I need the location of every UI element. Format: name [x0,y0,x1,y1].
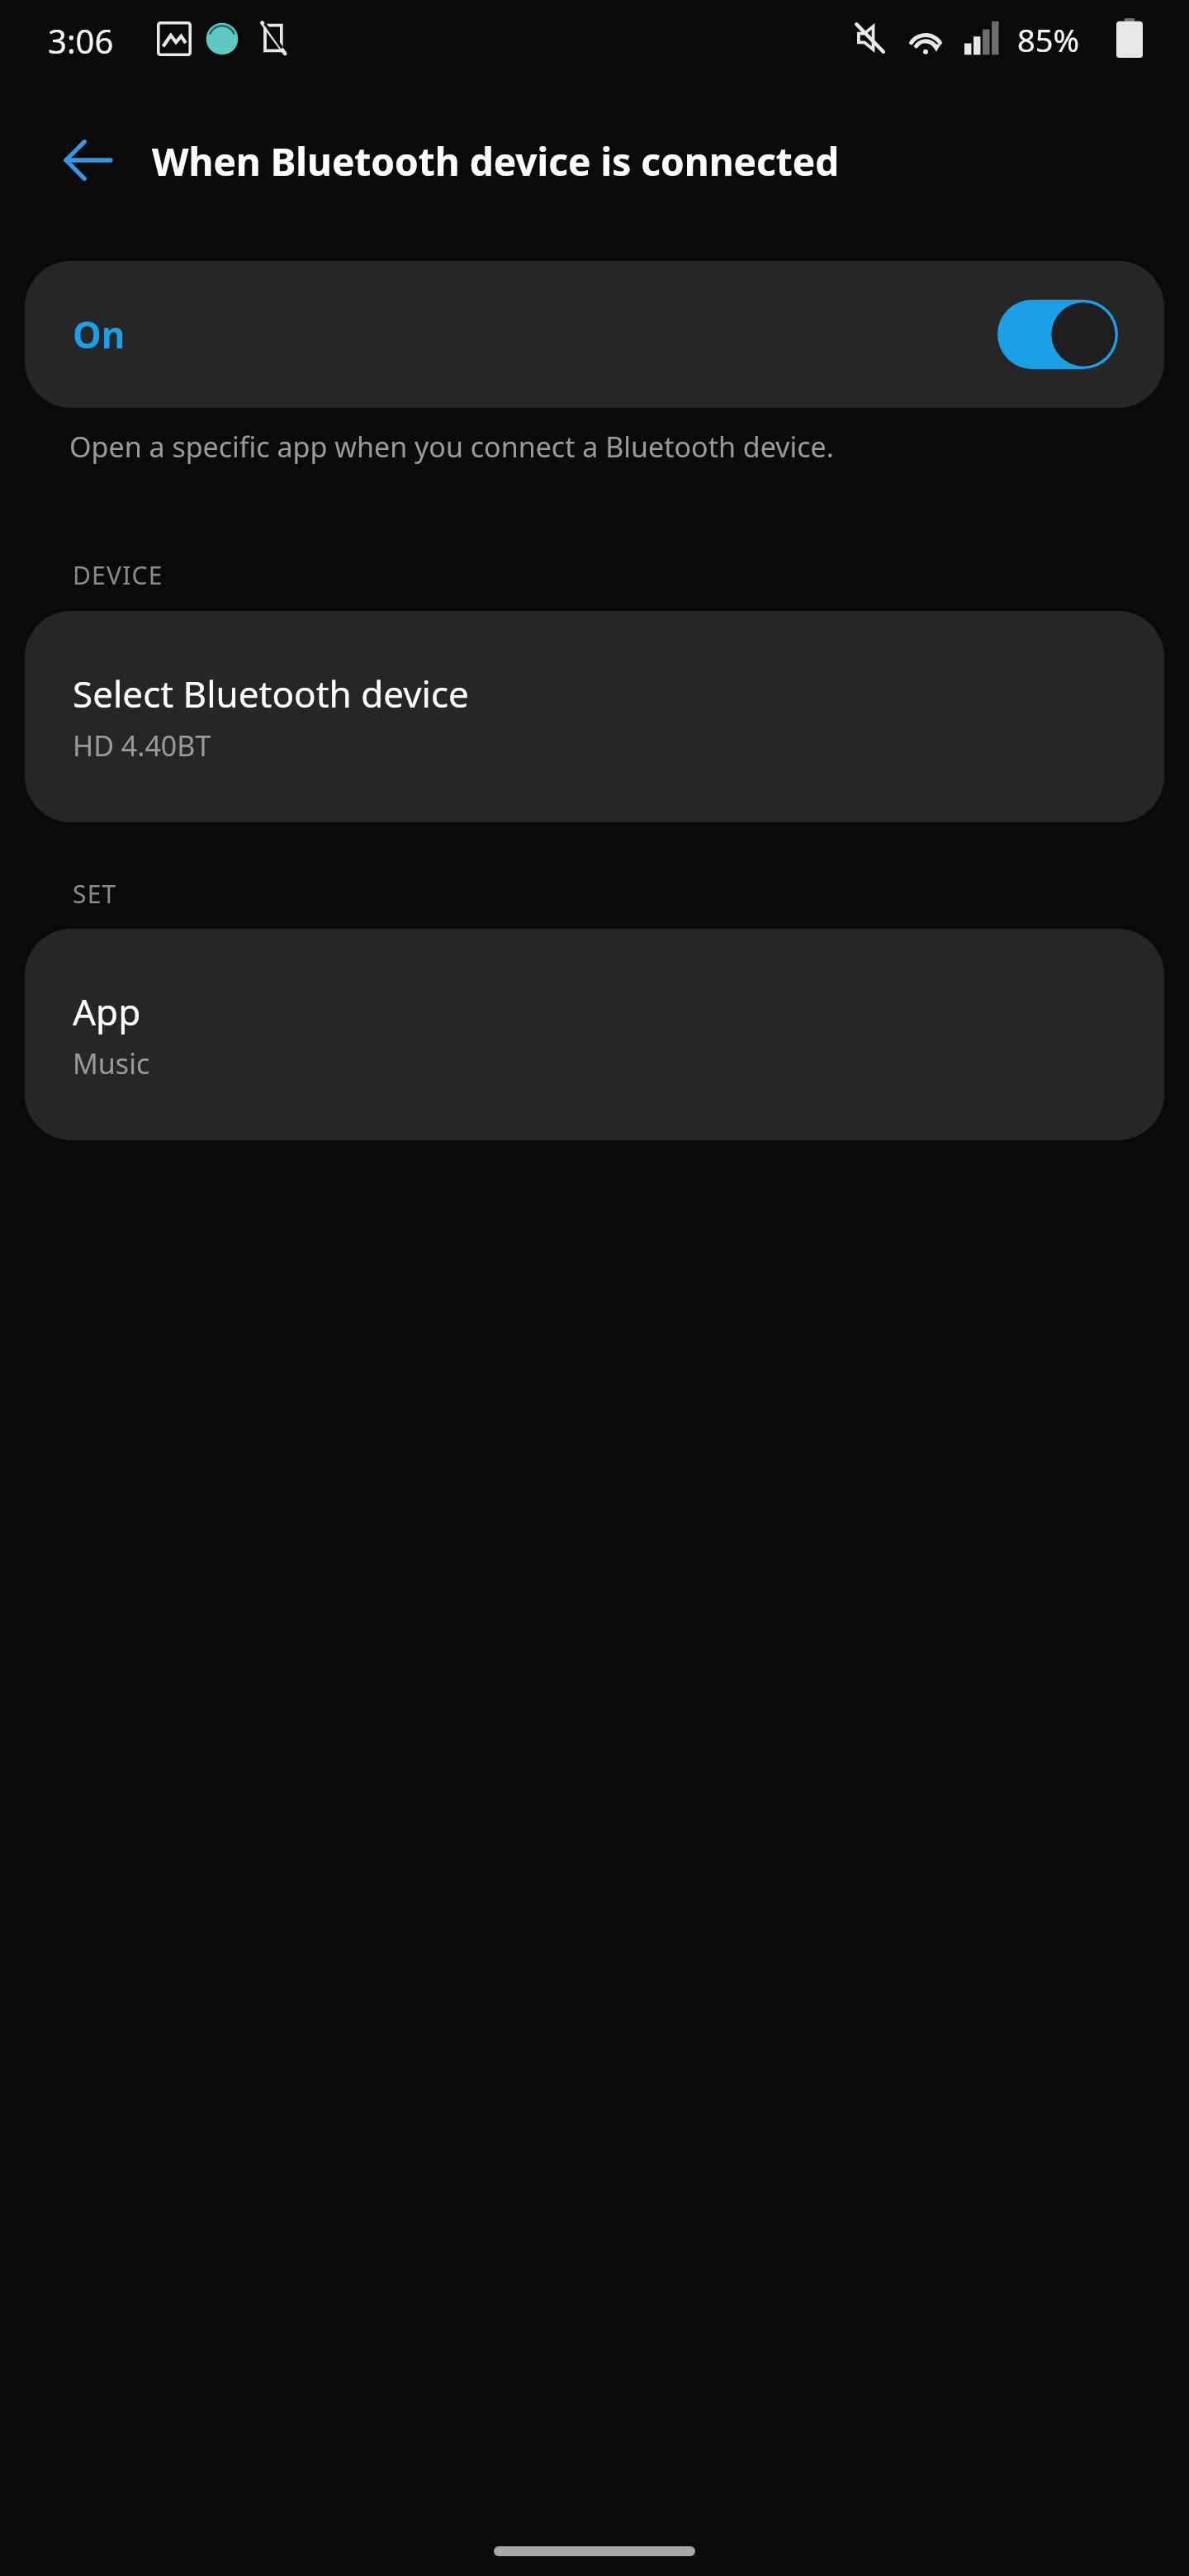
staticText: When Bluetooth device is connected [152,135,840,187]
staticText: HD 4.40BT [73,727,211,765]
staticText: SET [73,877,117,911]
staticText: App [73,987,141,1036]
staticText: Music [73,1044,150,1082]
button[interactable]: App [25,929,1164,1140]
button[interactable]: Back [40,112,135,208]
staticText: 3:06 [48,18,114,63]
staticText: Open a specific app when you connect a B… [69,428,834,466]
staticText: DEVICE [73,558,163,592]
button[interactable]: Select Bluetooth device [25,611,1164,822]
staticText: Select Bluetooth device [73,669,469,718]
button[interactable]: On [25,261,1164,408]
staticText: On [73,310,126,359]
staticText: 85% [1017,18,1080,61]
